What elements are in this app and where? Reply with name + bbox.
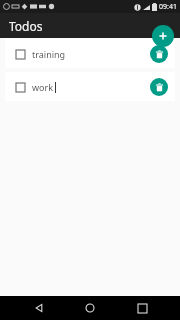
staticText: Todos <box>9 18 43 34</box>
staticText: work <box>32 81 54 93</box>
button[interactable]: Toggle training done <box>12 46 28 62</box>
button[interactable]: Delete work <box>150 78 168 96</box>
button[interactable]: Delete training <box>150 45 168 63</box>
button[interactable]: Add todo <box>152 25 174 47</box>
button[interactable]: Recent apps <box>129 296 155 320</box>
button[interactable]: Toggle work done <box>5 72 175 101</box>
staticText: 09:41 <box>159 2 177 12</box>
button[interactable]: Home <box>77 296 103 320</box>
button[interactable]: Toggle work done <box>12 79 28 95</box>
button[interactable]: Toggle training done <box>5 39 175 68</box>
button[interactable]: Back <box>26 296 52 320</box>
staticText: training <box>32 48 66 60</box>
